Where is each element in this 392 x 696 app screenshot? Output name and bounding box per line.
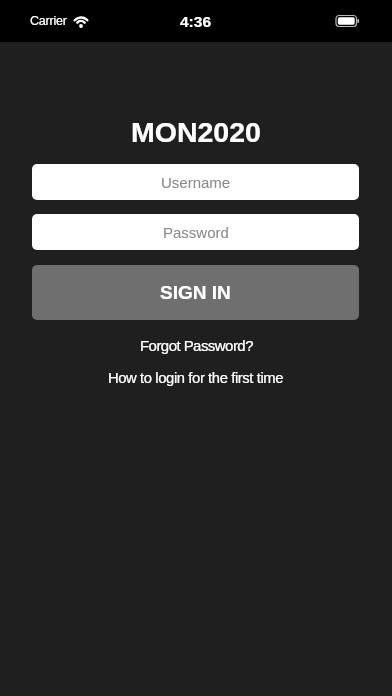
button[interactable]: SIGN IN	[32, 265, 359, 320]
staticText: MON2020	[131, 116, 261, 148]
button[interactable]: Password	[32, 214, 359, 250]
staticText: How to login for the first time	[108, 370, 284, 387]
button[interactable]: Forgot Password?	[140, 337, 253, 354]
button[interactable]: How to login for the first time	[108, 370, 284, 387]
staticText: 4:36	[180, 13, 212, 30]
staticText: SIGN IN	[160, 282, 231, 303]
staticText: Password	[163, 224, 229, 241]
staticText: Username	[161, 174, 231, 191]
staticText: Carrier	[30, 14, 67, 28]
staticText: Forgot Password?	[140, 337, 253, 354]
button[interactable]: Username	[32, 164, 359, 200]
